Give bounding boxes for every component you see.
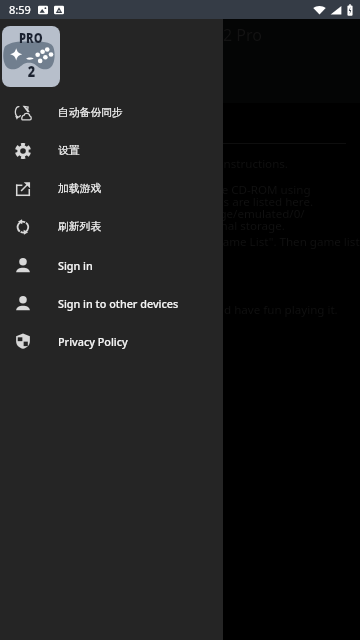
staticText: 自动备份同步 (58, 106, 123, 120)
staticText: Sign in (58, 258, 93, 273)
staticText: Sign in to other devices (58, 296, 179, 311)
staticText: ePSXe 2 Pro (173, 24, 263, 46)
button[interactable]: 加载游戏 (0, 170, 223, 208)
staticText: 8:59 (9, 2, 31, 17)
staticText: Enjoy the game, and have fun playing it. (120, 302, 338, 318)
staticText: Privacy Policy (58, 334, 128, 349)
button[interactable]: Privacy Policy (0, 322, 223, 360)
staticText: 刷新列表 (58, 220, 102, 234)
staticText: 设置 (58, 144, 80, 158)
staticText: Read carefully the instructions. (120, 156, 288, 172)
button[interactable]: 设置 (0, 132, 223, 170)
button[interactable]: 自动备份同步 (0, 94, 223, 132)
button[interactable]: Sign in (0, 246, 223, 284)
staticText: pc tools. Some tools are listed here. (120, 194, 314, 210)
button[interactable]: 刷新列表 (0, 208, 223, 246)
button[interactable]: Sign in to other devices (0, 284, 223, 322)
button[interactable]: ePSXe 2 Pro (2, 26, 60, 87)
staticText: ePSXe/isos in internal storage. (120, 218, 285, 234)
staticText: 加载游戏 (58, 182, 102, 196)
staticText: 1. Dump your game CD-ROM using (120, 182, 311, 198)
staticText: 2. Copy it to /storage/emulated/0/ (120, 206, 305, 222)
staticText: 3. Press "Refresh Game List". Then game … (120, 234, 360, 250)
staticText: PRO (19, 28, 43, 47)
staticText: 2 (28, 60, 35, 81)
